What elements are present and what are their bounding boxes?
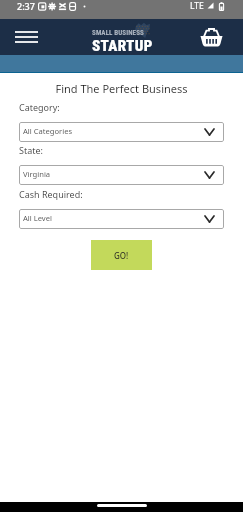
button[interactable]: Virginia — [19, 165, 224, 185]
button[interactable]: All Categories — [19, 122, 224, 142]
button[interactable]: Menu — [11, 24, 41, 50]
staticText: Virginia — [23, 169, 51, 179]
staticText: All Categories — [23, 126, 73, 136]
button[interactable]: GO! — [91, 240, 152, 270]
staticText: GO! — [114, 250, 129, 261]
staticText: Category: — [19, 101, 60, 113]
button[interactable]: All Level — [19, 209, 224, 229]
staticText: State: — [19, 144, 43, 156]
staticText: 2:37 — [17, 0, 35, 12]
staticText: Cash Required: — [19, 188, 83, 200]
staticText: Find The Perfect Business — [0, 81, 243, 96]
staticText: STARTUP — [92, 37, 153, 55]
staticText: SMALL BUSINESS — [92, 29, 144, 37]
staticText: LTE — [190, 0, 204, 12]
staticText: All Level — [23, 213, 52, 223]
button[interactable]: Cart — [197, 23, 225, 51]
